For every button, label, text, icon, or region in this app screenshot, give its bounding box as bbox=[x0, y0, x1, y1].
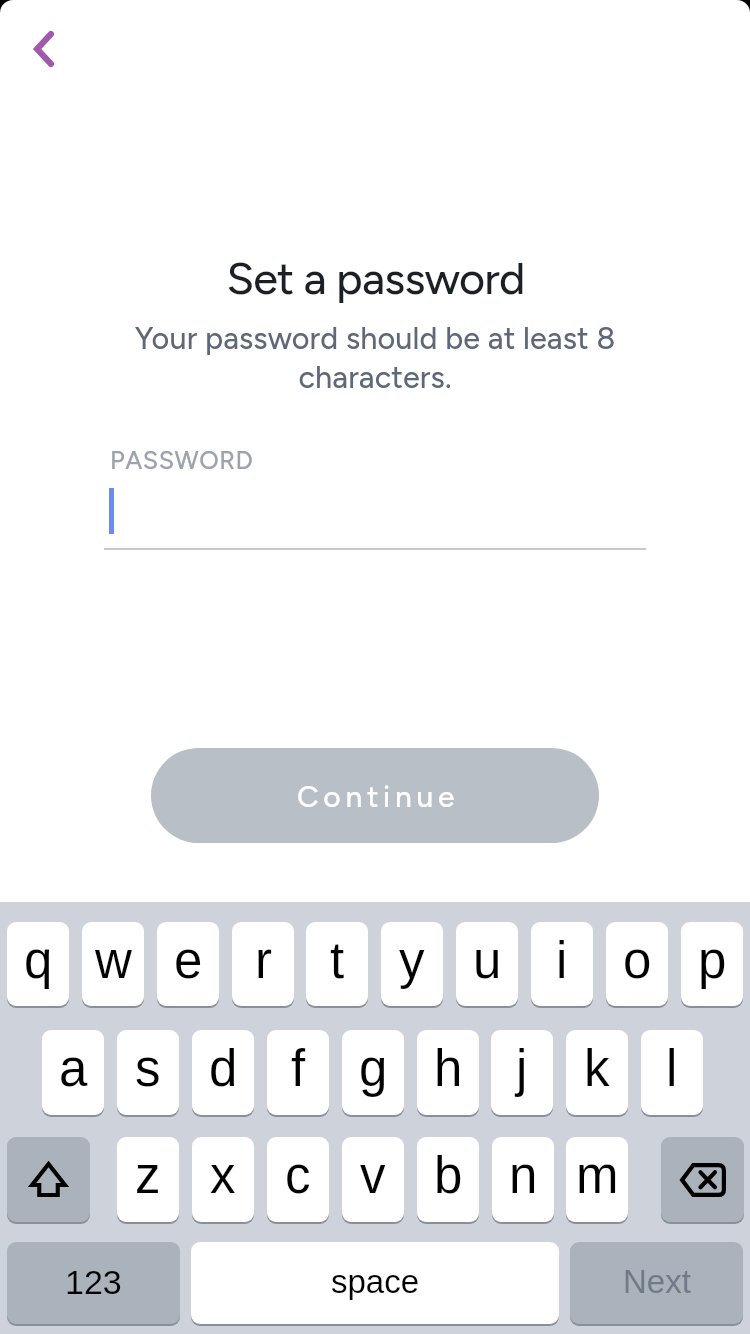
button[interactable]: o bbox=[606, 922, 668, 1006]
button[interactable]: c bbox=[267, 1137, 329, 1222]
staticText: q bbox=[24, 932, 53, 989]
button[interactable]: n bbox=[492, 1137, 554, 1222]
button[interactable]: b bbox=[417, 1137, 479, 1222]
button[interactable]: t bbox=[306, 922, 368, 1006]
staticText: 123 bbox=[65, 1263, 122, 1301]
staticText: u bbox=[473, 932, 502, 989]
staticText: r bbox=[255, 932, 272, 989]
staticText: o bbox=[623, 932, 652, 989]
button[interactable]: space bbox=[191, 1242, 559, 1324]
button[interactable]: v bbox=[342, 1137, 404, 1222]
button[interactable]: Continue bbox=[151, 748, 599, 843]
staticText: m bbox=[576, 1147, 619, 1204]
button[interactable]: p bbox=[681, 922, 743, 1006]
button[interactable]: r bbox=[232, 922, 294, 1006]
staticText: l bbox=[666, 1040, 678, 1097]
button[interactable]: k bbox=[566, 1030, 628, 1115]
button[interactable]: h bbox=[417, 1030, 479, 1115]
button[interactable]: Back bbox=[13, 18, 75, 80]
staticText: Continue bbox=[297, 778, 460, 814]
staticText: y bbox=[399, 932, 425, 989]
staticText: i bbox=[556, 932, 568, 989]
button[interactable]: e bbox=[157, 922, 219, 1006]
staticText: t bbox=[330, 932, 345, 989]
button[interactable]: 123 bbox=[7, 1242, 180, 1324]
staticText: p bbox=[698, 932, 727, 989]
button[interactable]: Shift bbox=[7, 1137, 90, 1222]
staticText: e bbox=[174, 932, 203, 989]
button[interactable]: s bbox=[117, 1030, 179, 1115]
button[interactable]: l bbox=[641, 1030, 703, 1115]
button[interactable]: a bbox=[42, 1030, 104, 1115]
staticText: s bbox=[135, 1040, 161, 1097]
button[interactable]: x bbox=[192, 1137, 254, 1222]
button[interactable]: g bbox=[342, 1030, 404, 1115]
staticText: Your password should be at least 8 chara… bbox=[118, 320, 632, 396]
staticText: space bbox=[331, 1263, 420, 1300]
staticText: Set a password bbox=[226, 251, 525, 305]
button[interactable]: w bbox=[82, 922, 144, 1006]
button[interactable]: y bbox=[381, 922, 443, 1006]
staticText: v bbox=[360, 1147, 386, 1204]
button[interactable]: m bbox=[566, 1137, 628, 1222]
button[interactable]: z bbox=[117, 1137, 179, 1222]
button[interactable]: d bbox=[192, 1030, 254, 1115]
button[interactable]: f bbox=[267, 1030, 329, 1115]
staticText: b bbox=[434, 1147, 463, 1204]
staticText: a bbox=[59, 1040, 88, 1097]
button[interactable]: i bbox=[531, 922, 593, 1006]
staticText: c bbox=[285, 1147, 311, 1204]
button[interactable]: q bbox=[7, 922, 69, 1006]
staticText: Next bbox=[623, 1263, 691, 1300]
staticText: PASSWORD bbox=[110, 445, 254, 475]
staticText: w bbox=[95, 932, 132, 989]
staticText: f bbox=[291, 1040, 306, 1097]
staticText: d bbox=[209, 1040, 238, 1097]
button[interactable]: j bbox=[491, 1030, 553, 1115]
staticText: z bbox=[135, 1147, 161, 1204]
button[interactable]: Next bbox=[570, 1242, 743, 1324]
button[interactable]: Backspace bbox=[661, 1137, 744, 1222]
staticText: h bbox=[434, 1040, 463, 1097]
staticText: k bbox=[584, 1040, 610, 1097]
button[interactable]: u bbox=[456, 922, 518, 1006]
staticText: x bbox=[210, 1147, 236, 1204]
staticText: n bbox=[509, 1147, 538, 1204]
staticText: g bbox=[359, 1040, 388, 1097]
staticText: j bbox=[516, 1040, 528, 1097]
